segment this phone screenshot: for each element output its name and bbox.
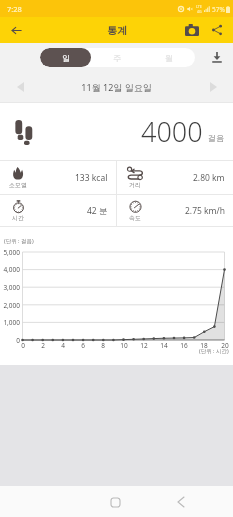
staticText: 주 [113,53,121,63]
staticText: 시간 [12,214,24,222]
staticText: 42 분 [87,205,108,217]
staticText: (단위 : 시간) [199,347,229,355]
staticText: 12 [139,341,149,350]
staticText: LTE [196,4,202,9]
staticText: 11월 12일 일요일 [81,81,152,93]
staticText: 0 [0,336,20,345]
staticText: 133 kcal [75,172,108,184]
staticText: 20 [220,341,230,350]
staticText: 4000 [141,113,203,150]
button[interactable]: Share [205,17,229,43]
staticText: 2.75 km/h [185,205,225,217]
staticText: 8 [98,341,108,350]
button[interactable]: 일 [40,48,91,67]
button[interactable]: Camera [179,17,205,43]
button[interactable]: Next day [193,71,233,103]
staticText: 3,000 [0,283,20,292]
button[interactable]: Download [201,43,233,71]
staticText: 4G [197,9,202,14]
staticText: 2 [38,341,48,350]
staticText: 7:28 [7,4,22,14]
staticText: 57% [212,5,225,14]
staticText: 4,000 [0,265,20,274]
button[interactable]: 거리 [117,161,233,194]
staticText: 일 [62,53,70,63]
staticText: 14 [159,341,169,350]
staticText: 통계 [107,24,127,37]
staticText: 5,000 [0,248,20,257]
staticText: 4 [58,341,68,350]
button[interactable]: Home [105,492,125,512]
button[interactable]: Previous day [0,71,40,103]
button[interactable]: 속도 [117,195,233,226]
button[interactable]: 주 [91,48,143,67]
staticText: 16 [179,341,189,350]
staticText: 6 [78,341,88,350]
button[interactable]: 월 [143,48,195,67]
button[interactable]: 시간 [0,195,116,226]
staticText: 10 [119,341,129,350]
staticText: 거리 [129,181,141,189]
staticText: (단위 : 걸음) [4,237,34,245]
button[interactable]: 소모열 [0,161,116,194]
staticText: 속도 [129,214,141,222]
staticText: 0 [18,341,28,350]
staticText: 2,000 [0,301,20,310]
staticText: 월 [165,53,173,63]
button[interactable]: Back [0,17,32,43]
staticText: 소모열 [9,181,27,189]
button[interactable]: Back [171,492,191,512]
staticText: 걸음 [208,133,224,143]
staticText: 2.80 km [193,172,225,184]
staticText: 18 [199,341,209,350]
staticText: 1,000 [0,318,20,327]
